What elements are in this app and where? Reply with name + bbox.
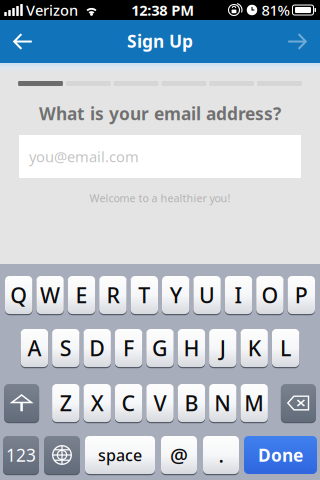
button[interactable]: Z: [52, 384, 79, 422]
staticText: E: [75, 281, 87, 309]
button[interactable]: Back: [0, 20, 46, 63]
button[interactable]: J: [209, 329, 236, 367]
button[interactable]: S: [52, 329, 79, 367]
staticText: N: [214, 389, 231, 417]
staticText: Welcome to a healthier you!: [89, 191, 230, 205]
staticText: D: [89, 334, 105, 362]
button[interactable]: .: [203, 436, 239, 474]
button[interactable]: G: [146, 329, 174, 367]
button[interactable]: O: [256, 276, 284, 314]
button[interactable]: E: [68, 276, 95, 314]
staticText: B: [184, 389, 198, 417]
staticText: .: [218, 442, 223, 468]
staticText: H: [183, 334, 199, 362]
button[interactable]: C: [115, 384, 142, 422]
staticText: Y: [170, 281, 182, 309]
button[interactable]: space: [85, 436, 155, 474]
staticText: U: [199, 281, 215, 309]
staticText: R: [106, 281, 119, 309]
button[interactable]: L: [272, 329, 299, 367]
button[interactable]: W: [36, 276, 64, 314]
button[interactable]: M: [240, 384, 268, 422]
staticText: X: [91, 389, 104, 417]
button[interactable]: Y: [162, 276, 189, 314]
button[interactable]: Done: [244, 436, 317, 474]
button[interactable]: B: [178, 384, 205, 422]
staticText: S: [60, 334, 72, 362]
staticText: F: [123, 334, 134, 362]
staticText: Sign Up: [127, 29, 193, 52]
button[interactable]: Next keyboard: [44, 436, 80, 474]
staticText: 12:38 PM: [131, 0, 194, 20]
staticText: L: [280, 334, 291, 362]
staticText: space: [98, 444, 142, 466]
staticText: Q: [10, 281, 27, 309]
button[interactable]: I: [225, 276, 252, 314]
button[interactable]: P: [288, 276, 315, 314]
staticText: @: [170, 442, 188, 468]
staticText: 81%: [261, 0, 289, 20]
button[interactable]: Shift: [4, 384, 39, 422]
button[interactable]: X: [83, 384, 111, 422]
button[interactable]: H: [178, 329, 205, 367]
staticText: V: [153, 389, 166, 417]
button[interactable]: F: [115, 329, 142, 367]
button[interactable]: T: [131, 276, 158, 314]
button[interactable]: @: [161, 436, 197, 474]
button[interactable]: A: [21, 329, 48, 367]
button[interactable]: V: [146, 384, 174, 422]
button[interactable]: Q: [5, 276, 32, 314]
button[interactable]: 123: [3, 436, 39, 474]
button[interactable]: D: [83, 329, 111, 367]
button[interactable]: Delete: [281, 384, 316, 422]
button[interactable]: R: [99, 276, 127, 314]
staticText: T: [138, 281, 150, 309]
staticText: What is your email address?: [39, 102, 281, 125]
button[interactable]: Next: [274, 20, 320, 63]
staticText: C: [122, 389, 136, 417]
button[interactable]: N: [209, 384, 236, 422]
staticText: I: [234, 281, 242, 309]
button[interactable]: U: [193, 276, 221, 314]
staticText: J: [220, 334, 226, 362]
staticText: Z: [60, 389, 72, 417]
staticText: O: [261, 281, 278, 309]
staticText: Done: [258, 443, 303, 466]
staticText: 123: [6, 443, 36, 466]
button[interactable]: K: [240, 329, 268, 367]
staticText: G: [152, 334, 168, 362]
staticText: P: [295, 281, 308, 309]
staticText: A: [27, 334, 41, 362]
staticText: M: [244, 389, 264, 417]
staticText: you@email.com: [29, 147, 139, 166]
staticText: Verizon: [26, 0, 78, 20]
staticText: W: [40, 281, 60, 309]
staticText: K: [248, 334, 261, 362]
